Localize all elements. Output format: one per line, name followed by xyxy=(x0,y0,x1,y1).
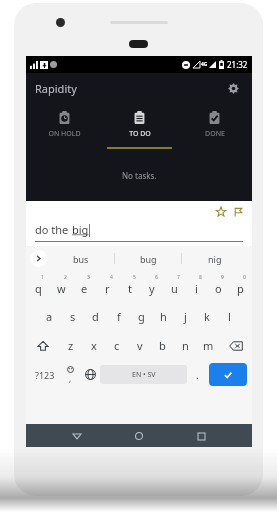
staticText: z xyxy=(68,338,74,353)
staticText: k xyxy=(204,309,210,324)
button[interactable]: 7 xyxy=(163,271,185,301)
button[interactable]: Shift xyxy=(26,331,59,360)
staticText: q xyxy=(35,281,42,296)
staticText: x xyxy=(91,338,97,353)
staticText: DONE xyxy=(205,129,225,139)
button[interactable]: Recents xyxy=(190,425,212,447)
staticText: u xyxy=(171,281,178,296)
button[interactable]: b xyxy=(151,331,174,360)
staticText: d xyxy=(92,309,99,324)
staticText: e xyxy=(81,281,88,296)
staticText: 4 xyxy=(110,274,113,281)
button[interactable]: Back xyxy=(66,425,88,447)
staticText: n xyxy=(182,338,189,353)
button[interactable]: 9 xyxy=(207,271,229,301)
staticText: 0 xyxy=(243,274,246,281)
staticText: v xyxy=(137,338,143,353)
staticText: EN • SV xyxy=(132,370,156,380)
staticText: ?123 xyxy=(35,369,55,381)
button[interactable]: l xyxy=(218,301,240,331)
button[interactable]: bus xyxy=(47,246,114,271)
staticText: g xyxy=(138,309,145,324)
button[interactable]: 3 xyxy=(73,271,96,301)
staticText: ON HOLD xyxy=(48,129,81,139)
staticText: TO DO xyxy=(129,129,151,139)
button[interactable]: Enter xyxy=(209,363,247,386)
button[interactable]: s xyxy=(61,301,84,331)
button[interactable]: 4 xyxy=(96,271,119,301)
button[interactable]: 5 xyxy=(119,271,141,301)
button[interactable]: ON HOLD xyxy=(26,103,102,147)
staticText: 5 xyxy=(133,274,136,281)
staticText: c xyxy=(114,338,120,353)
button[interactable]: x xyxy=(82,331,105,360)
button[interactable]: nig xyxy=(182,246,248,271)
button[interactable]: h xyxy=(152,301,174,331)
staticText: 7 xyxy=(177,274,180,281)
button[interactable]: Backspace xyxy=(220,331,252,360)
staticText: o xyxy=(215,281,222,296)
staticText: 8 xyxy=(199,274,202,281)
staticText: b xyxy=(159,338,166,353)
staticText: 1 xyxy=(41,274,44,281)
staticText: No tasks. xyxy=(122,170,157,181)
staticText: y xyxy=(149,281,155,296)
staticText: a xyxy=(46,309,53,324)
staticText: s xyxy=(70,309,76,324)
staticText: 2 xyxy=(64,274,67,281)
button[interactable]: do the xyxy=(35,222,243,242)
button[interactable]: 6 xyxy=(141,271,163,301)
button[interactable]: Settings xyxy=(223,78,243,98)
staticText: 3 xyxy=(87,274,90,281)
button[interactable]: ?123 xyxy=(29,360,60,389)
staticText: do the xyxy=(35,222,72,237)
button[interactable]: EN • SV xyxy=(100,365,187,384)
button[interactable]: c xyxy=(105,331,128,360)
button[interactable]: More suggestions xyxy=(30,250,47,267)
button[interactable]: g xyxy=(130,301,152,331)
staticText: p xyxy=(237,281,244,296)
button[interactable]: 0 xyxy=(229,271,251,301)
staticText: r xyxy=(105,281,110,296)
button[interactable]: Change language xyxy=(80,360,100,389)
button[interactable]: . xyxy=(187,360,207,389)
button[interactable]: m xyxy=(197,331,220,360)
button[interactable]: Star xyxy=(213,204,228,219)
button[interactable]: 2 xyxy=(50,271,73,301)
staticText: t xyxy=(128,281,132,296)
staticText: 6 xyxy=(155,274,158,281)
staticText: 21:32 xyxy=(227,59,248,70)
staticText: 4G xyxy=(201,61,208,68)
button[interactable]: d xyxy=(84,301,107,331)
staticText: j xyxy=(184,309,187,324)
staticText: , xyxy=(69,373,72,384)
staticText: f xyxy=(117,309,121,324)
button[interactable]: v xyxy=(128,331,151,360)
button[interactable]: f xyxy=(107,301,130,331)
button[interactable]: Home xyxy=(128,425,150,447)
button[interactable]: bug xyxy=(115,246,181,271)
staticText: m xyxy=(203,338,214,353)
staticText: l xyxy=(228,309,231,324)
staticText: h xyxy=(160,309,167,324)
button[interactable]: TO DO xyxy=(102,103,177,147)
staticText: bus xyxy=(73,253,89,265)
button[interactable]: Flag xyxy=(230,204,245,219)
staticText: big xyxy=(72,222,89,237)
button[interactable]: z xyxy=(59,331,82,360)
button[interactable]: k xyxy=(196,301,218,331)
staticText: nig xyxy=(208,253,222,265)
staticText: w xyxy=(57,281,66,296)
button[interactable]: DONE xyxy=(177,103,252,147)
staticText: Rapidity xyxy=(35,81,77,96)
staticText: i xyxy=(195,281,198,296)
button[interactable]: a xyxy=(38,301,61,331)
button[interactable]: j xyxy=(174,301,196,331)
staticText: . xyxy=(196,368,199,382)
button[interactable]: Emoji xyxy=(60,360,80,389)
button[interactable]: 8 xyxy=(185,271,207,301)
button[interactable]: 1 xyxy=(27,271,50,301)
button[interactable]: n xyxy=(174,331,197,360)
staticText: 9 xyxy=(221,274,224,281)
staticText: bug xyxy=(140,253,157,265)
